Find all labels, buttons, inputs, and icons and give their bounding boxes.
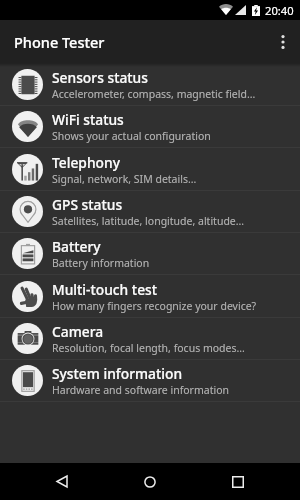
button[interactable]: WiFi status [0,106,300,147]
staticText: Hardware and software information [52,383,229,397]
button[interactable]: Battery [0,233,300,274]
staticText: 20:40 [265,3,294,18]
staticText: WiFi status [52,110,124,129]
staticText: Accelerometer, compass, magnetic field… [52,87,256,101]
staticText: Multi-touch test [52,280,158,299]
staticText: Telephony [52,153,120,172]
button[interactable]: Back [32,463,92,500]
staticText: Sensors status [52,68,148,87]
staticText: Battery information [52,256,150,270]
staticText: Battery [52,237,101,256]
staticText: Resolution, focal length, focus modes… [52,341,245,355]
staticText: Satellites, latitude, longitude, altitud… [52,214,245,228]
staticText: GPS status [52,195,123,214]
button[interactable]: Telephony [0,148,300,190]
staticText: Phone Tester [14,32,105,52]
button[interactable]: Sensors status [0,63,300,105]
staticText: Camera [52,322,104,341]
staticText: Shows your actual configuration [52,129,211,143]
button[interactable]: More options [266,20,300,63]
staticText: How many fingers recognize your device? [52,299,257,313]
button[interactable]: Multi-touch test [0,275,300,317]
staticText: System information [52,364,183,383]
button[interactable]: Recent apps [208,463,268,500]
button[interactable]: Home [120,463,180,500]
button[interactable]: GPS status [0,191,300,232]
button[interactable]: Camera [0,318,300,359]
button[interactable]: System information [0,360,300,401]
staticText: Signal, network, SIM details… [52,172,197,186]
